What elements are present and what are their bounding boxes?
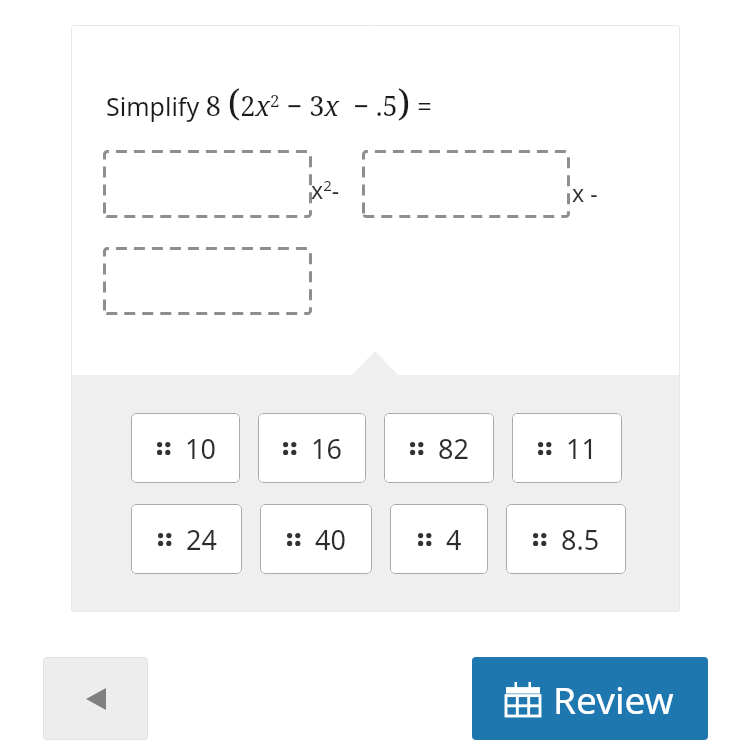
staticText: 40 — [315, 521, 346, 558]
staticText: 8.5 — [561, 521, 600, 558]
staticText: 16 — [311, 430, 342, 467]
button[interactable]: Answer blank — [103, 150, 312, 218]
button[interactable]: Answer blank — [103, 247, 312, 315]
staticText: Review — [553, 674, 674, 724]
button[interactable]: 24 — [131, 504, 242, 574]
staticText: 24 — [186, 521, 217, 558]
staticText: x - — [572, 177, 598, 208]
button[interactable]: 4 — [390, 504, 488, 574]
button[interactable]: Answer blank — [362, 150, 570, 218]
button[interactable]: Review — [472, 657, 708, 740]
button[interactable]: 82 — [384, 413, 494, 483]
button[interactable]: Back — [43, 657, 148, 740]
staticText: 82 — [438, 430, 469, 467]
staticText: Simplify 8 (2x2 − 3x − .5) = — [106, 78, 433, 127]
button[interactable]: 16 — [258, 413, 366, 483]
button[interactable]: 40 — [260, 504, 372, 574]
staticText: x2- — [311, 174, 340, 205]
staticText: 11 — [566, 430, 597, 467]
button[interactable]: 8.5 — [506, 504, 626, 574]
button[interactable]: 11 — [512, 413, 622, 483]
button[interactable]: 10 — [131, 413, 240, 483]
staticText: 4 — [446, 521, 462, 558]
staticText: 10 — [185, 430, 216, 467]
